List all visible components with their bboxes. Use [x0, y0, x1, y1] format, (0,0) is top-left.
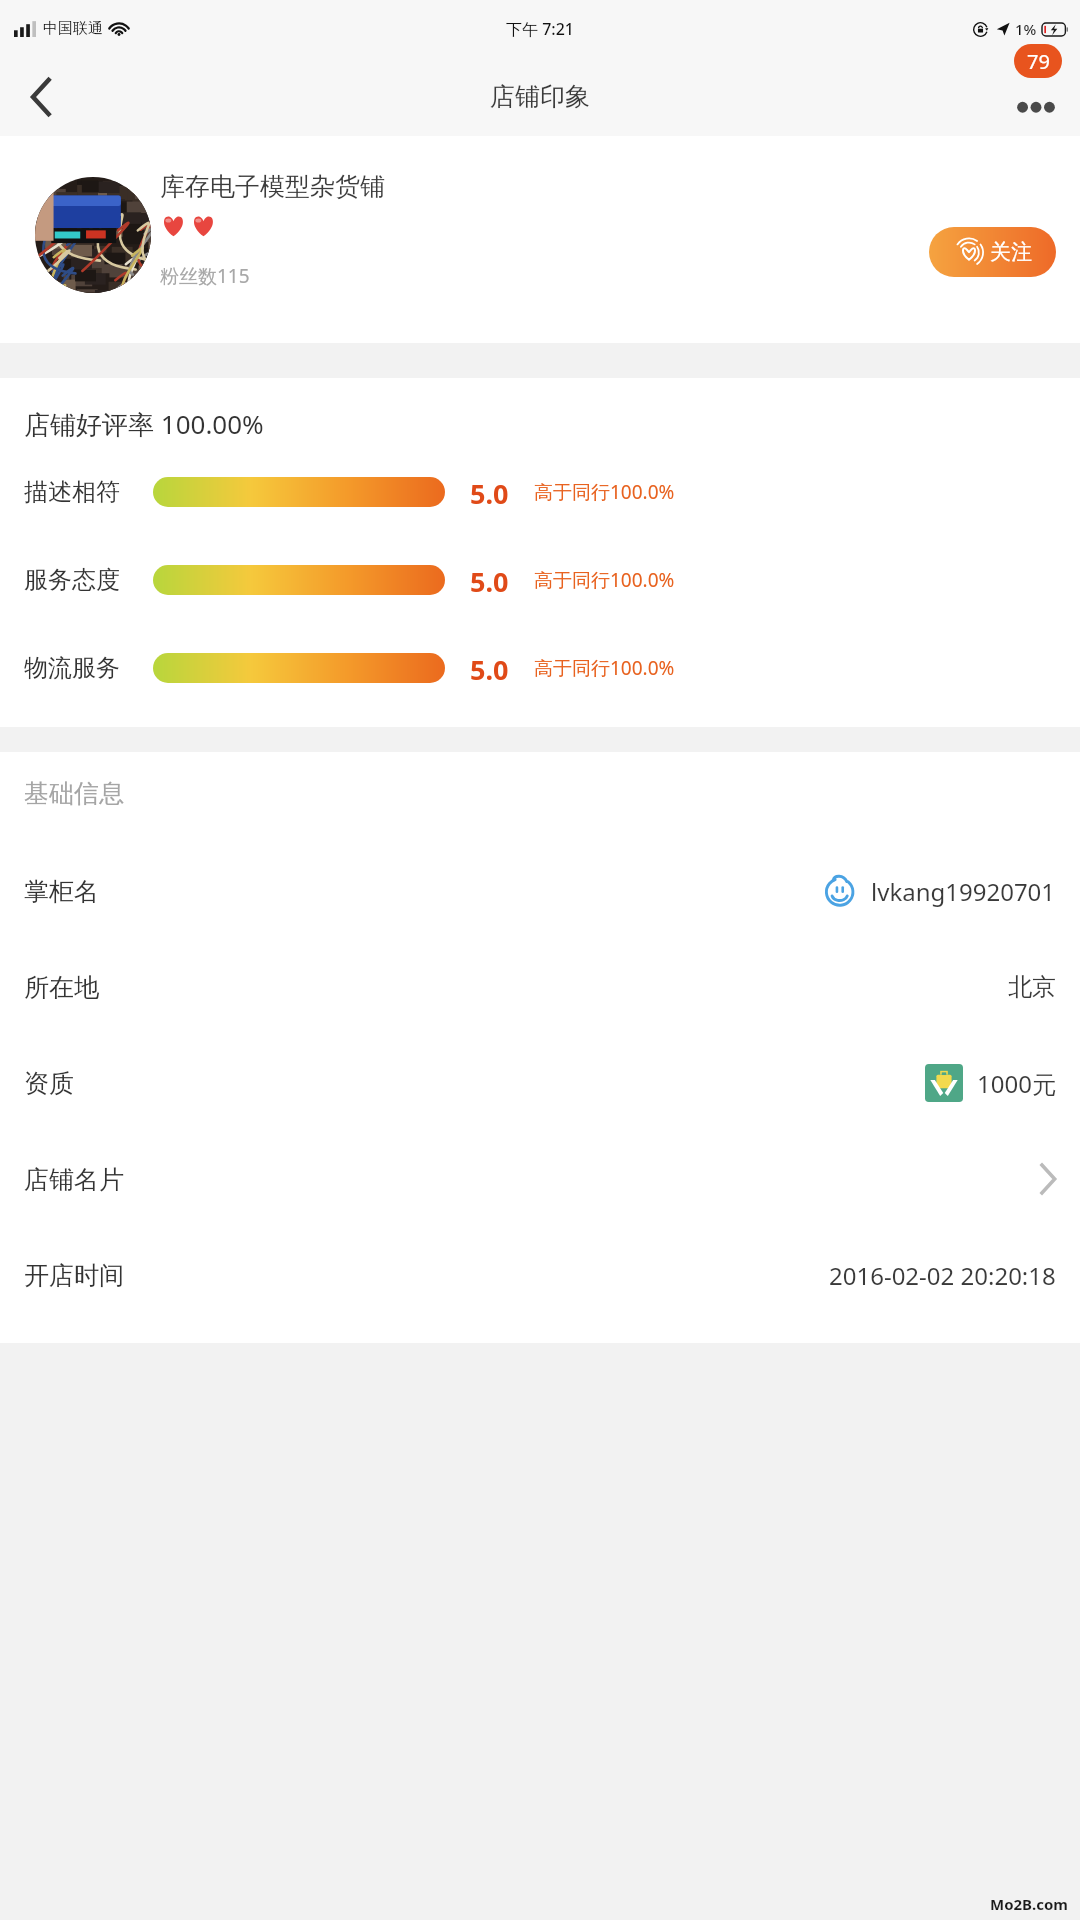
- staticText: 库存电子模型杂货铺: [160, 171, 385, 202]
- staticText: 79: [1027, 48, 1050, 75]
- staticText: 资质: [24, 1068, 74, 1099]
- staticText: 北京: [1008, 972, 1056, 1002]
- staticText: 开店时间: [24, 1260, 124, 1291]
- staticText: Mo2B.com: [990, 1894, 1068, 1914]
- staticText: 5.0: [470, 475, 509, 509]
- staticText: 关注: [990, 239, 1032, 265]
- staticText: 物流服务: [24, 653, 120, 683]
- staticText: lvkang19920701: [871, 875, 1056, 908]
- staticText: 粉丝数115: [160, 263, 250, 289]
- button[interactable]: Shop avatar: [35, 177, 151, 293]
- button[interactable]: 关注: [929, 227, 1056, 277]
- staticText: 基础信息: [24, 778, 124, 809]
- staticText: 下午 7:21: [506, 18, 574, 40]
- staticText: 高于同行100.0%: [534, 655, 675, 681]
- button[interactable]: More options: [1004, 65, 1068, 129]
- staticText: 中国联通: [43, 19, 103, 38]
- staticText: 5.0: [470, 563, 509, 597]
- staticText: 店铺印象: [490, 81, 590, 112]
- staticText: 所在地: [24, 972, 99, 1003]
- staticText: 服务态度: [24, 565, 120, 595]
- staticText: 5.0: [470, 651, 509, 685]
- button[interactable]: 店铺名片: [0, 1131, 1080, 1227]
- staticText: 描述相符: [24, 477, 120, 507]
- staticText: 店铺名片: [24, 1164, 124, 1195]
- button[interactable]: Back: [10, 66, 72, 128]
- staticText: 店铺好评率 100.00%: [24, 406, 264, 442]
- staticText: 掌柜名: [24, 876, 99, 907]
- staticText: 1%: [1015, 19, 1037, 39]
- staticText: 2016-02-02 20:20:18: [829, 1259, 1056, 1292]
- staticText: 高于同行100.0%: [534, 567, 675, 593]
- staticText: 高于同行100.0%: [534, 479, 675, 505]
- staticText: 1000元: [977, 1067, 1056, 1100]
